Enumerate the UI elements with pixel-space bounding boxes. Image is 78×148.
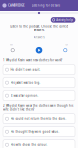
button[interactable]: He didn't own a suit. [3,65,75,75]
button[interactable]: It was a fair opinion. [3,91,75,101]
button[interactable]: He thought they were good value. [3,127,75,137]
staticText: Activity help [56,18,73,22]
staticText: His wife chose the colour. [11,143,48,146]
button[interactable]: Rewind 15 seconds [11,48,14,52]
staticText: Listening for details [32,4,60,7]
staticText: His jacket was too big. [11,81,41,84]
button[interactable]: His jacket was too big. [3,78,75,88]
staticText: 1:28 [65,44,68,46]
staticText: Listen to the podcast. Choose the correc… [10,25,68,32]
staticText: 2 Why did Kevin wear the clothes even th… [3,104,73,111]
button[interactable]: He could not return them to the store. [3,114,75,124]
staticText: 1 Why did Kevin want new clothes for wor… [3,58,62,62]
staticText: He didn't own a suit. [11,68,41,71]
staticText: CAMBRIDGE [8,4,24,7]
staticText: 0:00 [10,44,13,46]
staticText: He thought they were good value. [11,130,60,133]
button[interactable]: Playback speed [64,48,67,52]
staticText: Answers [33,35,44,39]
button[interactable]: His wife chose the colour. [3,140,75,148]
button[interactable]: Play [36,47,42,53]
staticText: He could not return them to the store. [11,117,67,120]
button[interactable]: Activity help [51,17,75,23]
staticText: It was a fair opinion. [11,94,39,97]
button[interactable]: CAMBRIDGE [2,3,24,8]
